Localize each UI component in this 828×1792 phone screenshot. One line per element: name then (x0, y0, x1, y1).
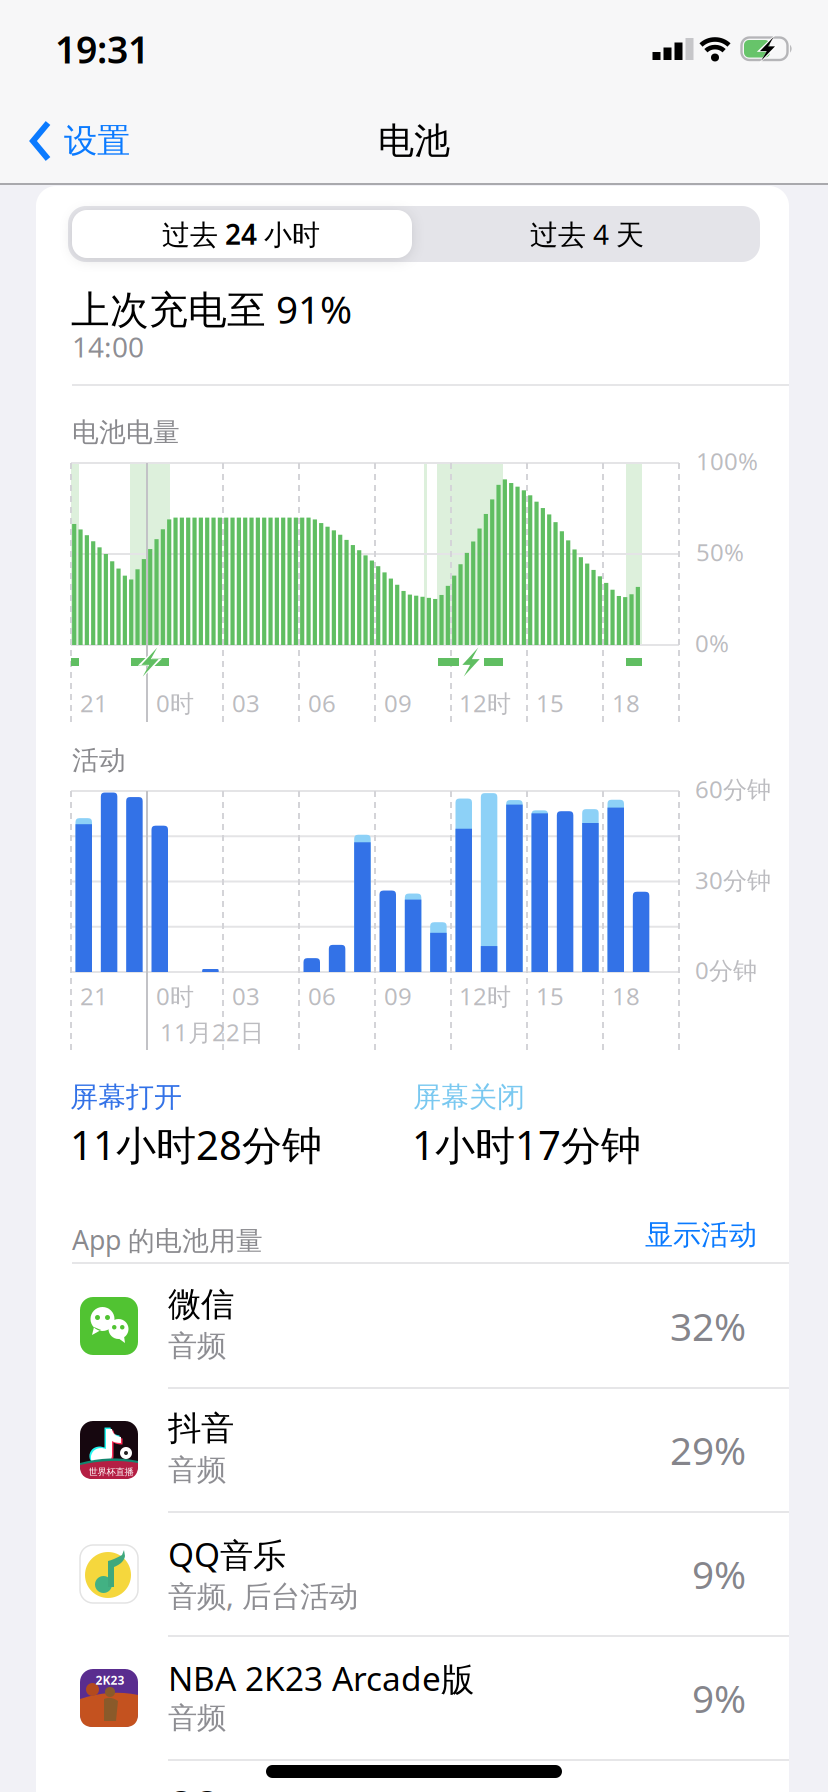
staticText: App 的电池用量 (72, 1222, 263, 1258)
staticText: 0时 (156, 687, 194, 719)
staticText: 2K23 (95, 1672, 124, 1688)
staticText: 过去 24 小时 (162, 215, 320, 253)
button[interactable]: 微信 (36, 1264, 789, 1388)
staticText: 电池 (378, 119, 450, 163)
staticText: 09 (384, 980, 412, 1012)
staticText: 15 (536, 980, 564, 1012)
staticText: QQ (168, 1780, 220, 1792)
staticText: 12时 (459, 980, 511, 1012)
staticText: 音频 (168, 1700, 226, 1736)
staticText: 60分钟 (695, 773, 771, 805)
button[interactable]: 2K23 (36, 1636, 789, 1760)
staticText: 11月22日 (160, 1016, 264, 1048)
staticText: 50% (696, 536, 744, 568)
staticText: 15 (536, 687, 564, 719)
staticText: 微信 (168, 1284, 234, 1325)
staticText: 32% (670, 1300, 746, 1352)
staticText: 世界杯直播 (88, 1466, 133, 1478)
staticText: 06 (308, 687, 336, 719)
staticText: 30分钟 (695, 864, 771, 896)
staticText: 0% (695, 627, 729, 659)
staticText: 0分钟 (695, 954, 757, 986)
staticText: 19:31 (55, 24, 149, 74)
staticText: 屏幕关闭 (413, 1080, 525, 1114)
staticText: 活动 (72, 744, 126, 777)
staticText: 03 (232, 687, 260, 719)
staticText: 抖音 (168, 1408, 234, 1449)
button[interactable]: 设置 (30, 120, 130, 161)
button[interactable]: QQ音乐 (36, 1512, 789, 1636)
staticText: 09 (384, 687, 412, 719)
staticText: 9% (692, 1672, 746, 1724)
button[interactable]: 世界杯直播 (36, 1388, 789, 1512)
staticText: 屏幕打开 (70, 1080, 182, 1114)
staticText: 12时 (459, 687, 511, 719)
staticText: 06 (308, 980, 336, 1012)
staticText: 11小时28分钟 (70, 1118, 322, 1171)
staticText: QQ音乐 (168, 1532, 286, 1576)
staticText: 电池电量 (72, 416, 180, 449)
staticText: 设置 (64, 120, 130, 161)
button[interactable]: 显示活动 (645, 1218, 757, 1252)
staticText: 18 (612, 687, 640, 719)
button[interactable]: 过去 4 天 (414, 206, 760, 262)
staticText: 音频, 后台活动 (168, 1576, 358, 1615)
staticText: 0时 (156, 980, 194, 1012)
staticText: 21 (80, 980, 108, 1012)
staticText: 显示活动 (645, 1218, 757, 1252)
staticText: 100% (696, 445, 758, 477)
staticText: 音频 (168, 1452, 226, 1488)
staticText: 上次充电至 91% (71, 283, 352, 334)
staticText: 音频 (168, 1328, 226, 1364)
staticText: NBA 2K23 Arcade版 (168, 1656, 474, 1700)
staticText: 03 (232, 980, 260, 1012)
button[interactable]: QQ (36, 1760, 789, 1792)
staticText: 14:00 (72, 328, 144, 365)
staticText: 18 (612, 980, 640, 1012)
staticText: 29% (670, 1424, 746, 1476)
staticText: 21 (80, 687, 108, 719)
staticText: 9% (692, 1548, 746, 1600)
staticText: 过去 4 天 (530, 215, 644, 253)
staticText: 1小时17分钟 (412, 1118, 641, 1171)
button[interactable]: 过去 24 小时 (68, 206, 414, 262)
